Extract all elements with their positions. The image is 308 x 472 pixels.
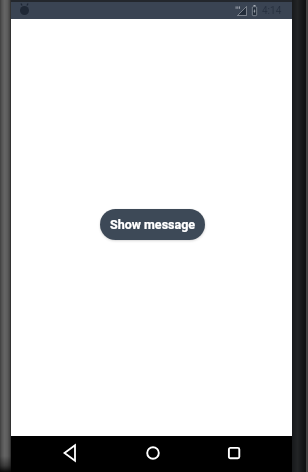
button[interactable] — [142, 442, 164, 464]
button[interactable]: Show message — [100, 209, 205, 240]
staticText: 4:14 — [262, 5, 282, 17]
button[interactable] — [60, 442, 82, 464]
staticText: Show message — [110, 217, 196, 232]
button[interactable] — [223, 442, 245, 464]
